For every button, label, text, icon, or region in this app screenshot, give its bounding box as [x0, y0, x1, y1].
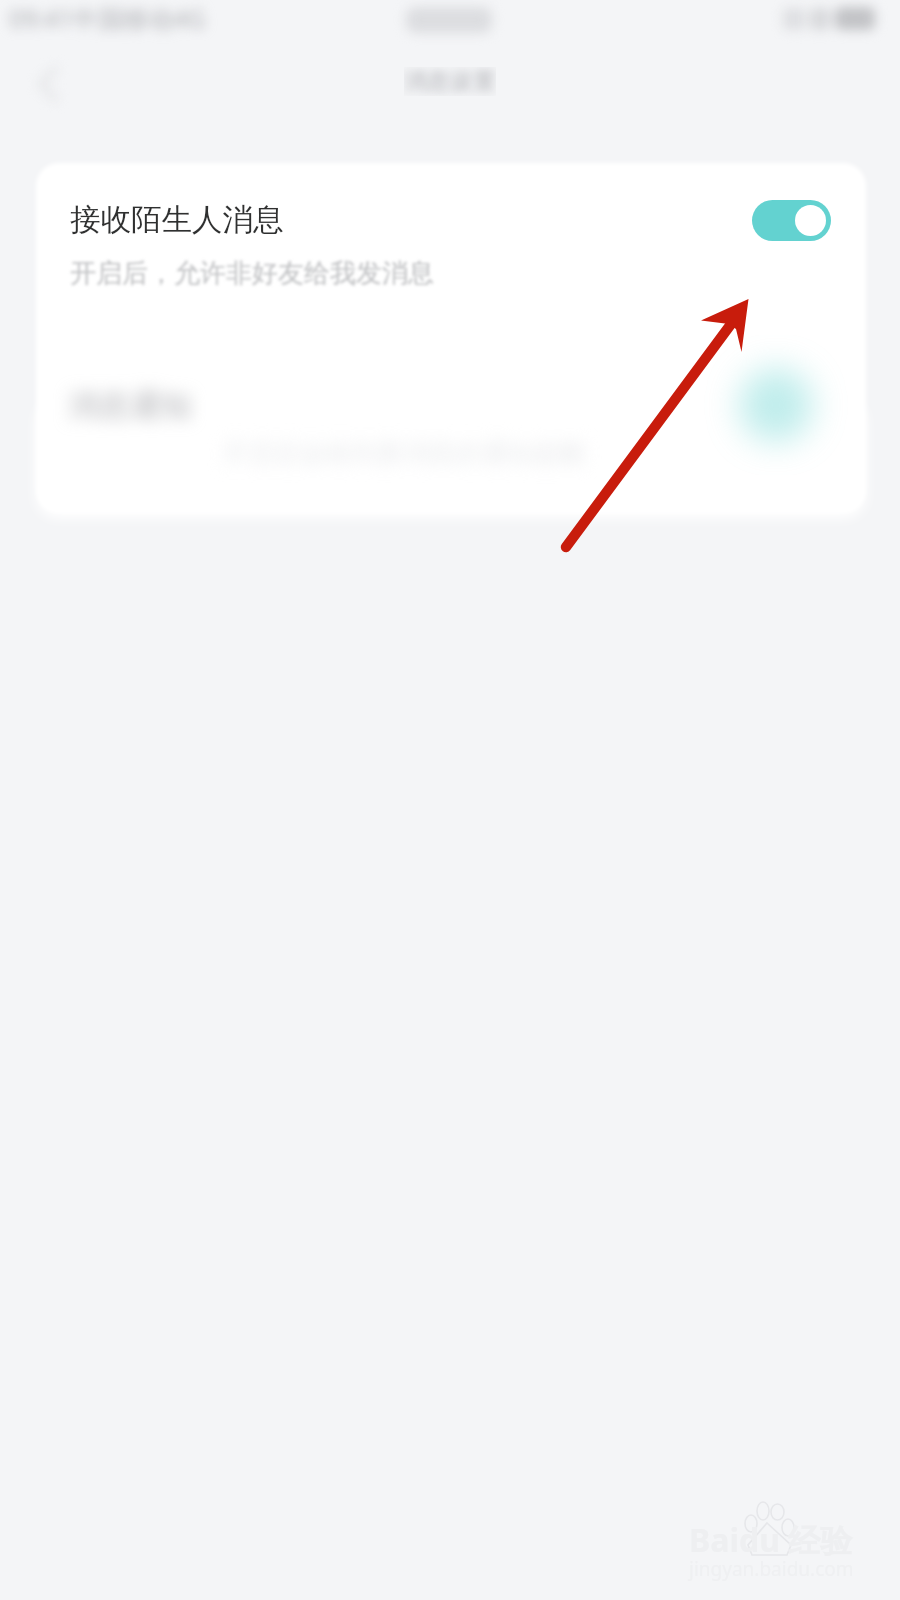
button[interactable]: 接收陌生人消息 [36, 163, 866, 325]
staticText: 消息通知 [68, 386, 192, 425]
staticText: 接收陌生人消息 [70, 201, 284, 239]
staticText: 开启后，允许非好友给我发消息 [70, 257, 434, 290]
staticText: 消息设置 [404, 67, 496, 96]
button[interactable]: 消息通知 [36, 325, 866, 513]
staticText: 09:41中国移动4G [9, 1, 206, 35]
staticText: Baidu 经验 [689, 1518, 853, 1562]
button[interactable]: Toggle receiving messages from strangers [752, 200, 831, 241]
